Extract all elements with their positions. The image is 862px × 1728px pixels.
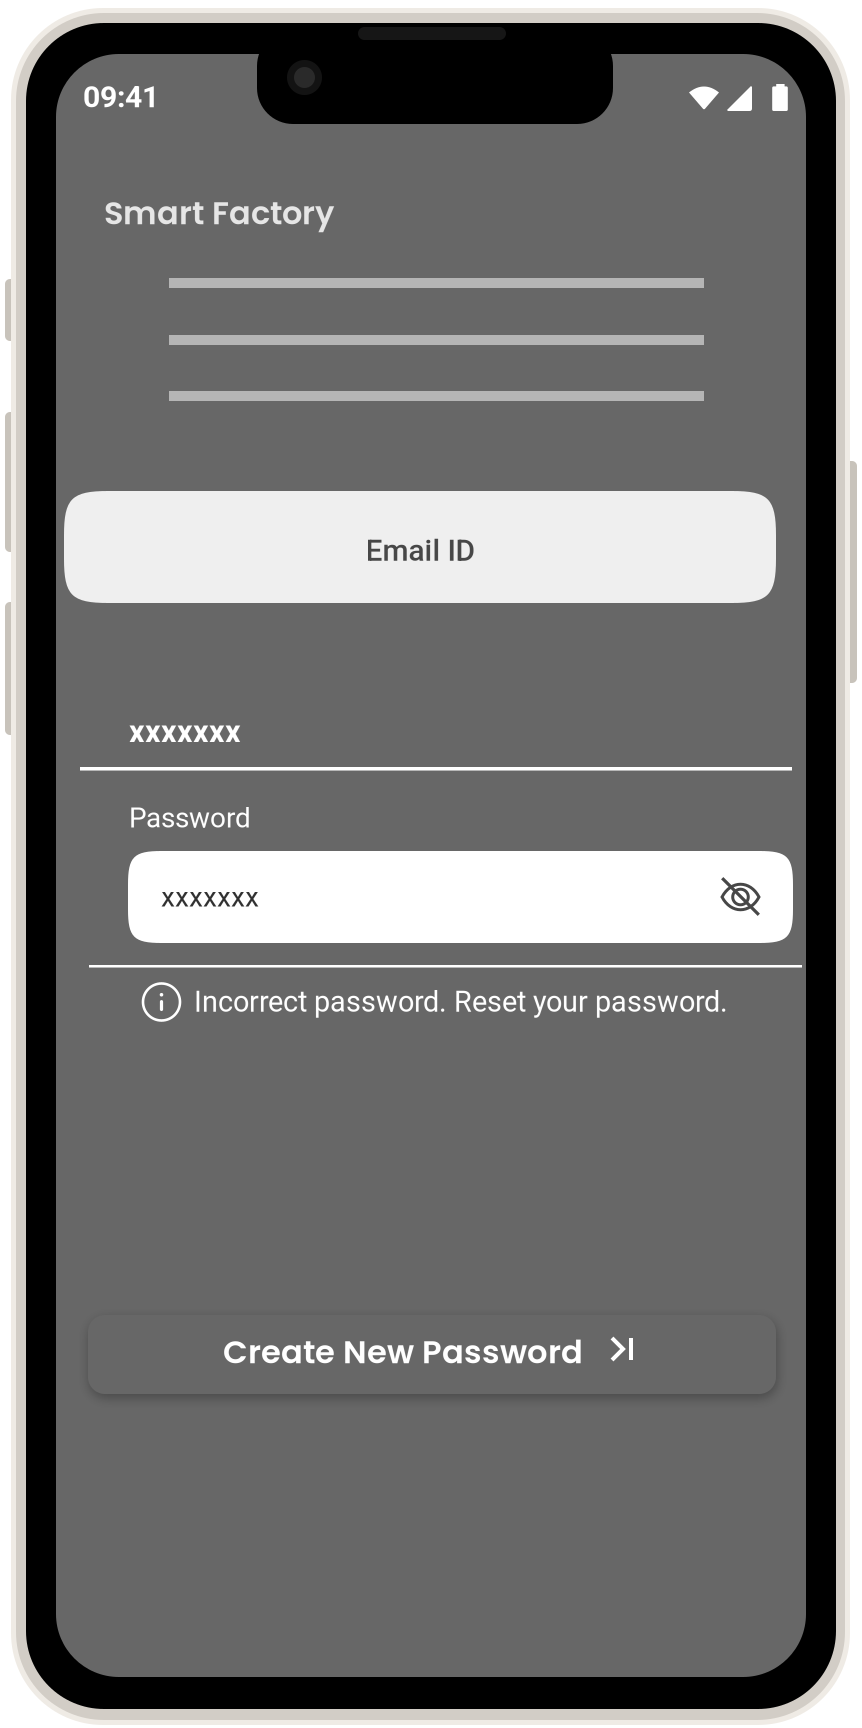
- staticText: xxxxxxx: [129, 714, 241, 750]
- staticText: Create New Password: [223, 1329, 583, 1374]
- button[interactable]: Email ID: [64, 491, 776, 603]
- staticText: xxxxxxx: [161, 880, 259, 913]
- button[interactable]: Show password: [720, 876, 761, 918]
- staticText: Password: [129, 802, 251, 834]
- button[interactable]: Create New Password: [88, 1315, 776, 1394]
- staticText: Email ID: [365, 533, 474, 568]
- staticText: Smart Factory: [104, 191, 334, 235]
- staticText: Incorrect password. Reset your password.: [194, 985, 728, 1019]
- staticText: 09:41: [83, 79, 159, 115]
